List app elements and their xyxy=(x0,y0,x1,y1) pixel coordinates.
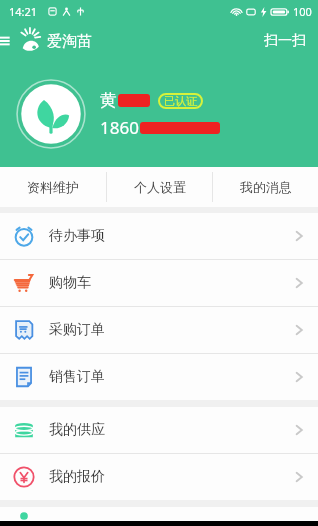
staticText: 销售订单 xyxy=(49,368,105,386)
button[interactable]: 我的供应 xyxy=(0,407,318,453)
button[interactable]: 待办事项 xyxy=(0,213,318,259)
staticText: 我的供应 xyxy=(49,421,105,439)
staticText: 资料维护 xyxy=(27,179,79,195)
staticText: 采购订单 xyxy=(49,321,105,339)
staticText: 我的报价 xyxy=(49,468,105,486)
button[interactable]: 我的报价 xyxy=(0,454,318,500)
staticText: 100 xyxy=(293,4,312,19)
staticText: 个人设置 xyxy=(134,179,186,195)
staticText: 已认证 xyxy=(164,94,197,108)
button[interactable]: 销售订单 xyxy=(0,354,318,400)
staticText: 扫一扫 xyxy=(264,32,306,50)
button[interactable]: 个人设置 xyxy=(107,167,212,207)
button[interactable]: Menu xyxy=(0,31,18,51)
button[interactable]: 采购订单 xyxy=(0,307,318,353)
button[interactable]: 资料维护 xyxy=(0,167,106,207)
staticText: 我的消息 xyxy=(240,179,292,195)
staticText: 14:21 xyxy=(9,4,38,19)
staticText: 购物车 xyxy=(49,274,91,292)
staticText: 爱淘苗 xyxy=(47,32,92,51)
staticText: 待办事项 xyxy=(49,227,105,245)
button[interactable]: 扫一扫 xyxy=(252,26,318,56)
staticText: 黄 xyxy=(100,90,117,111)
button[interactable]: 购物车 xyxy=(0,260,318,306)
button[interactable]: 我的消息 xyxy=(213,167,318,207)
staticText: 1860 xyxy=(100,116,139,139)
